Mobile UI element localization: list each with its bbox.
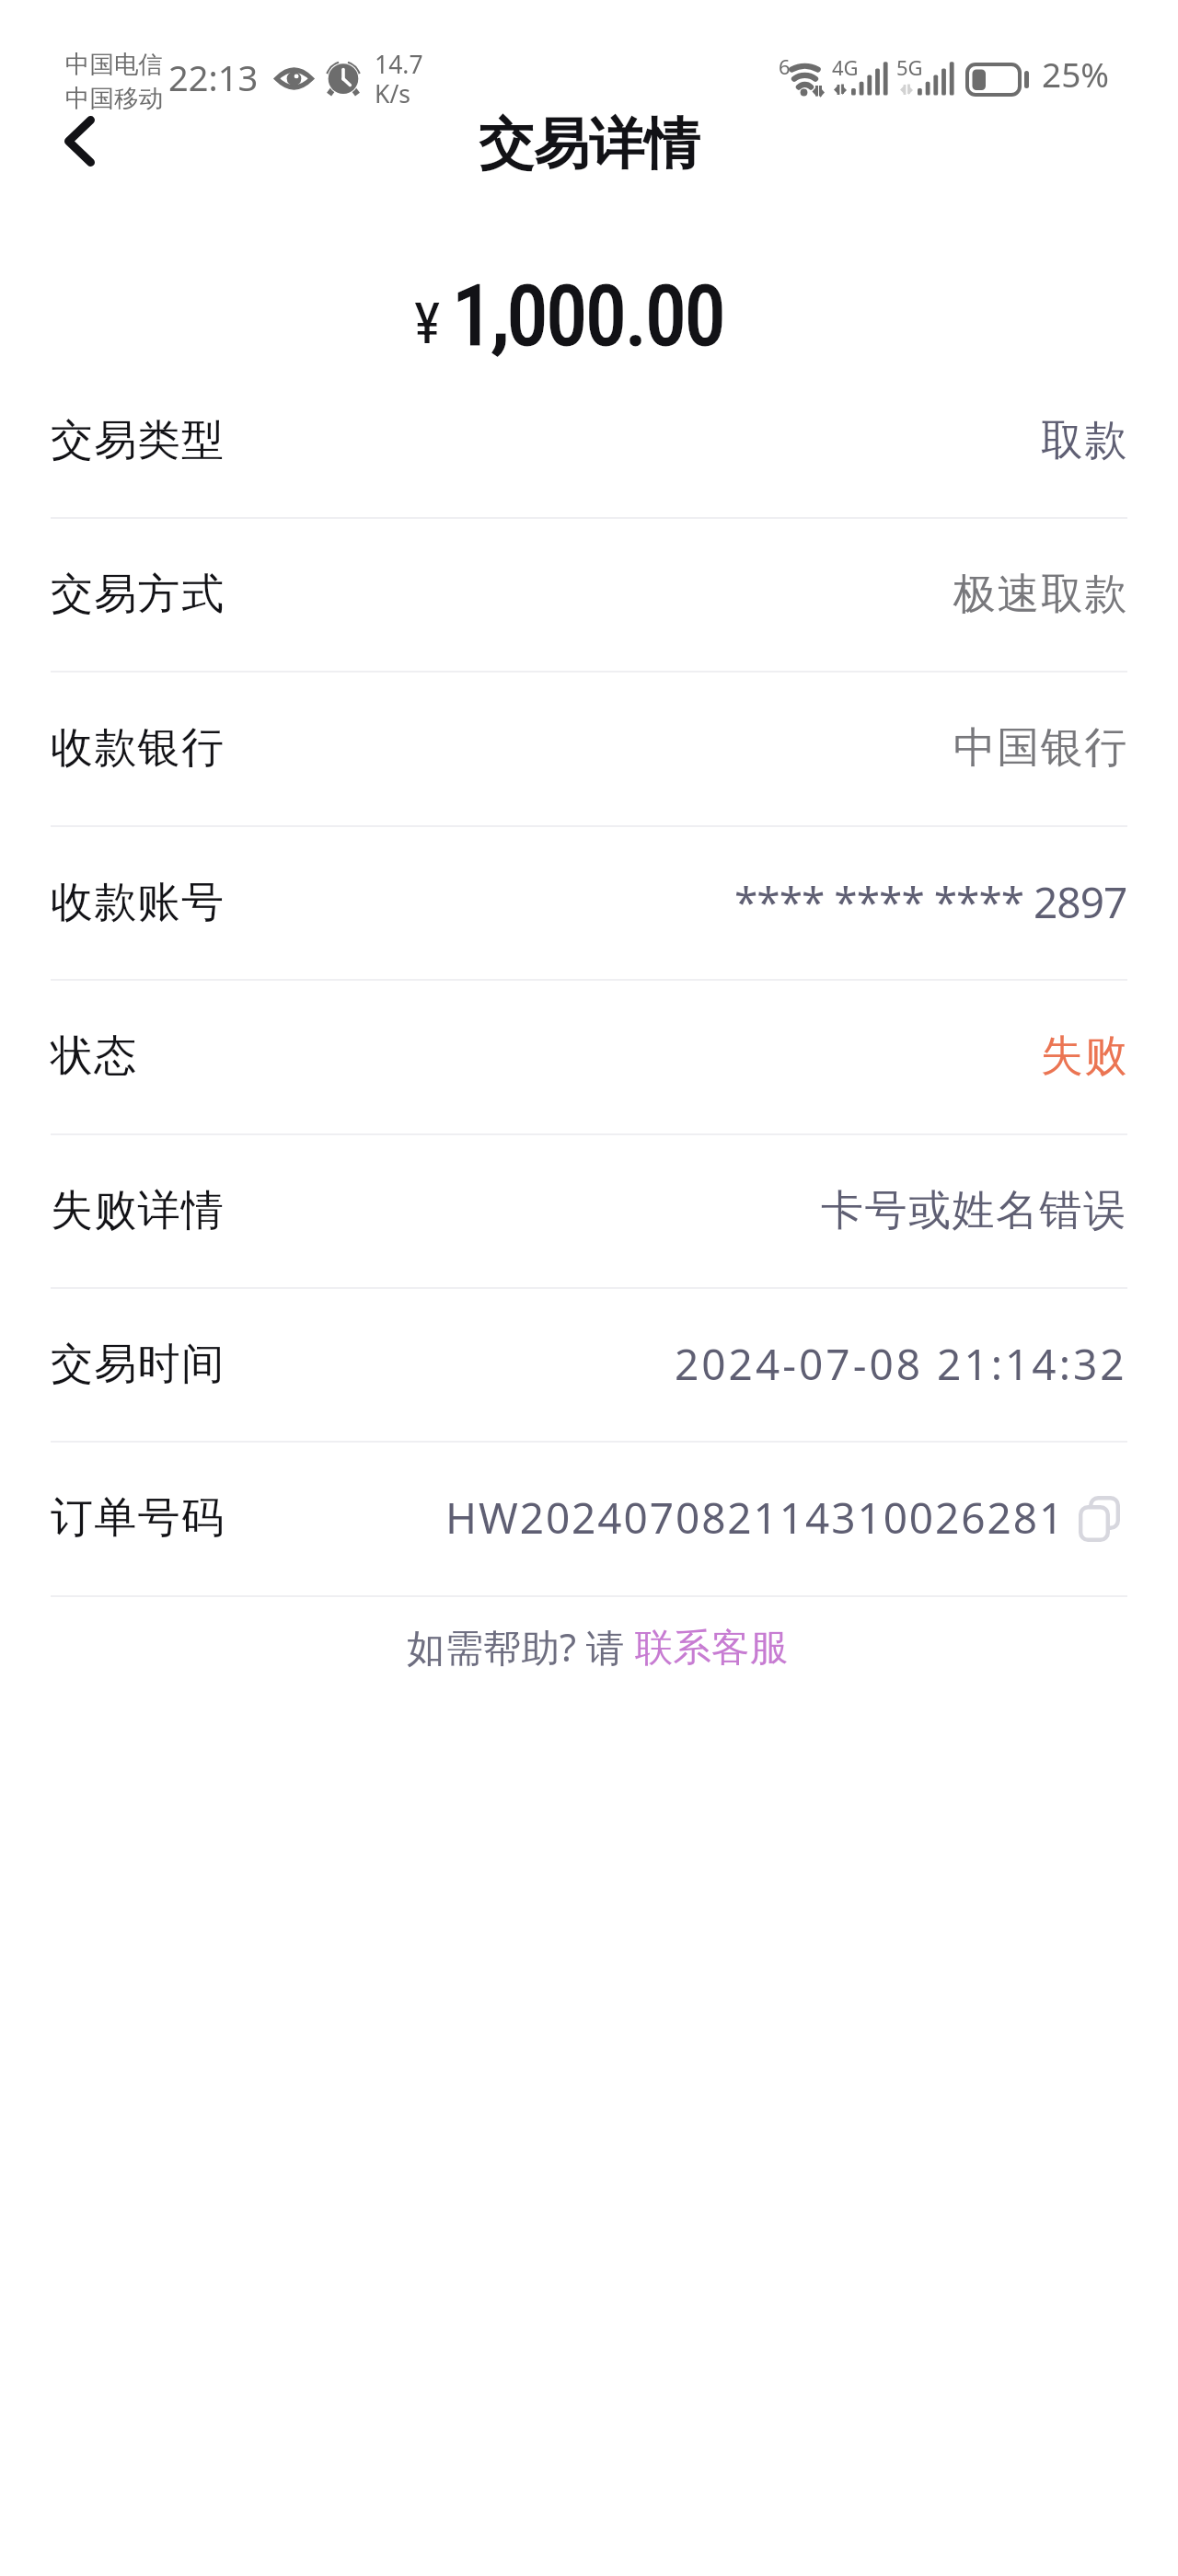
button[interactable]: 订单号码: [0, 1441, 1178, 1594]
staticText: 中国银行: [953, 721, 1127, 775]
staticText: HW202407082114310026281: [445, 1489, 1066, 1547]
staticText: K/s: [375, 77, 410, 110]
staticText: 14.7: [375, 48, 423, 81]
staticText: ¥: [414, 291, 441, 356]
staticText: 6: [779, 52, 791, 80]
staticText: 交易类型: [51, 414, 225, 467]
staticText: 如需帮助? 请: [407, 1621, 635, 1673]
button[interactable]: 收款账号: [0, 825, 1178, 979]
staticText: 收款银行: [51, 721, 225, 775]
button[interactable]: 交易时间: [0, 1287, 1178, 1441]
staticText: 订单号码: [51, 1491, 225, 1545]
staticText: 4G: [832, 53, 859, 81]
staticText: 22:13: [168, 53, 259, 101]
button[interactable]: 失败详情: [0, 1133, 1178, 1287]
button[interactable]: 交易类型: [0, 363, 1178, 517]
staticText: 中国电信: [65, 49, 163, 79]
staticText: 交易时间: [51, 1338, 225, 1391]
button[interactable]: 交易方式: [0, 517, 1178, 671]
staticText: 卡号或姓名错误: [821, 1184, 1127, 1237]
staticText: 取款: [1040, 414, 1127, 467]
staticText: 交易方式: [51, 568, 225, 621]
staticText: 2024-07-08 21:14:32: [675, 1335, 1127, 1393]
staticText: **** **** **** 2897: [734, 873, 1127, 931]
button[interactable]: 状态: [0, 979, 1178, 1133]
button[interactable]: 收款银行: [0, 671, 1178, 824]
staticText: 状态: [51, 1029, 138, 1083]
staticText: 失败: [1040, 1029, 1127, 1083]
staticText: 极速取款: [953, 568, 1127, 621]
staticText: 联系客服: [635, 1624, 788, 1672]
staticText: 5G: [896, 53, 923, 81]
staticText: 1,000.00: [453, 268, 724, 363]
button[interactable]: Copy: [1078, 1496, 1122, 1540]
staticText: 交易详情: [479, 109, 699, 179]
staticText: 中国移动: [65, 83, 163, 113]
staticText: 收款账号: [51, 876, 225, 929]
staticText: 25%: [1042, 51, 1110, 97]
button[interactable]: 联系客服: [635, 1624, 788, 1672]
staticText: 失败详情: [51, 1184, 225, 1237]
button[interactable]: Back: [42, 104, 116, 178]
